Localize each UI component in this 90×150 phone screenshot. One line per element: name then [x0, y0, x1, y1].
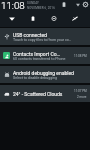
- button[interactable]: Battery: [22, 13, 43, 24]
- button[interactable]: Contacts Import Co…: [0, 47, 90, 64]
- staticText: SUNDAY: [27, 1, 40, 5]
- staticText: Contacts Import Co…: [13, 51, 60, 57]
- button[interactable]: 24° - Scattered Clouds: [0, 85, 90, 102]
- staticText: USB connected: [13, 32, 47, 38]
- staticText: NOVEMBER 6, 2016: [27, 6, 55, 10]
- button[interactable]: Settings: [82, 1, 88, 7]
- button[interactable]: USB connected: [0, 28, 90, 45]
- staticText: 60 contacts transferred to Phone: [13, 57, 66, 61]
- staticText: 11:08 PM: [74, 54, 87, 58]
- button[interactable]: Android debugging enabled: [0, 66, 90, 83]
- button[interactable]: Do not disturb: [43, 13, 64, 24]
- staticText: Select to disable debugging: [13, 76, 58, 80]
- staticText: 11:07 PM: [74, 89, 87, 93]
- staticText: 2 more: [77, 95, 87, 99]
- staticText: 11:08: [1, 0, 25, 11]
- staticText: Touch to copy files to/from your co…: [13, 38, 72, 42]
- staticText: 24° - Scattered Clouds: [13, 91, 63, 97]
- button[interactable]: Wi‑Fi: [1, 13, 22, 24]
- button[interactable]: Airplane mode: [64, 13, 85, 24]
- staticText: Android debugging enabled: [13, 70, 74, 76]
